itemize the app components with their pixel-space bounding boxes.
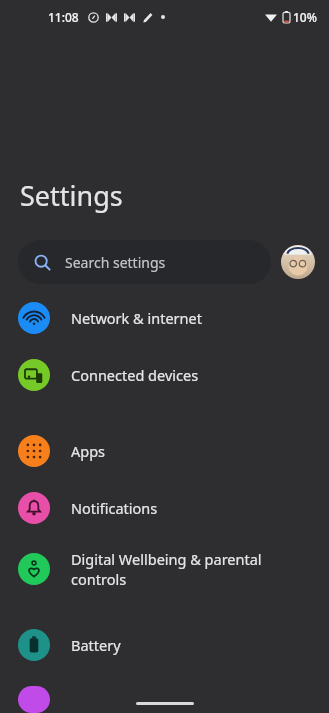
staticText: Search settings <box>65 253 166 272</box>
button[interactable]: Network & internet <box>0 302 329 334</box>
button[interactable]: Account <box>281 245 315 279</box>
button[interactable] <box>0 686 329 713</box>
button[interactable]: Battery <box>0 629 329 661</box>
staticText: 10% <box>293 9 317 25</box>
button[interactable]: Connected devices <box>0 359 329 391</box>
staticText: 11:08 <box>48 9 79 25</box>
staticText: Settings <box>20 177 123 214</box>
staticText: Notifications <box>71 498 158 518</box>
button[interactable]: Apps <box>0 435 329 467</box>
staticText: Battery <box>71 635 121 655</box>
button[interactable]: Notifications <box>0 492 329 524</box>
staticText: Network & internet <box>71 308 202 328</box>
staticText: Connected devices <box>71 365 199 385</box>
staticText: Apps <box>71 441 106 461</box>
button[interactable]: Search settings <box>18 240 271 284</box>
button[interactable]: Digital Wellbeing & parental controls <box>0 549 329 589</box>
staticText: Digital Wellbeing & parental controls <box>71 549 262 589</box>
